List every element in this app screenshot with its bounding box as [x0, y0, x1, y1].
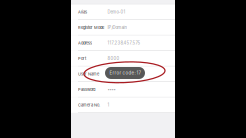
- staticText: ••••: [107, 87, 115, 92]
- staticText: 8000: [107, 56, 119, 61]
- staticText: Password: [78, 87, 95, 92]
- button[interactable]: Port: [71, 51, 175, 66]
- staticText: Port: [78, 56, 86, 61]
- staticText: Alias: [78, 9, 87, 14]
- staticText: IP/Domain: [107, 25, 126, 30]
- button[interactable]: Password: [71, 82, 175, 97]
- button[interactable]: Camera No.: [71, 97, 175, 113]
- staticText: Camera No.: [78, 102, 100, 107]
- button[interactable]: Address: [71, 35, 175, 51]
- staticText: 117.238.457.575: [107, 40, 140, 45]
- staticText: Address: [78, 40, 92, 45]
- staticText: Error code: 17: [109, 70, 140, 76]
- button[interactable]: User Name: [71, 66, 175, 82]
- button[interactable]: Register Mode: [71, 20, 175, 35]
- staticText: Register Mode: [78, 25, 104, 30]
- staticText: User Name: [78, 71, 99, 76]
- button[interactable]: Alias: [71, 4, 175, 20]
- staticText: 1: [107, 102, 109, 107]
- staticText: Demo-01: [107, 9, 125, 14]
